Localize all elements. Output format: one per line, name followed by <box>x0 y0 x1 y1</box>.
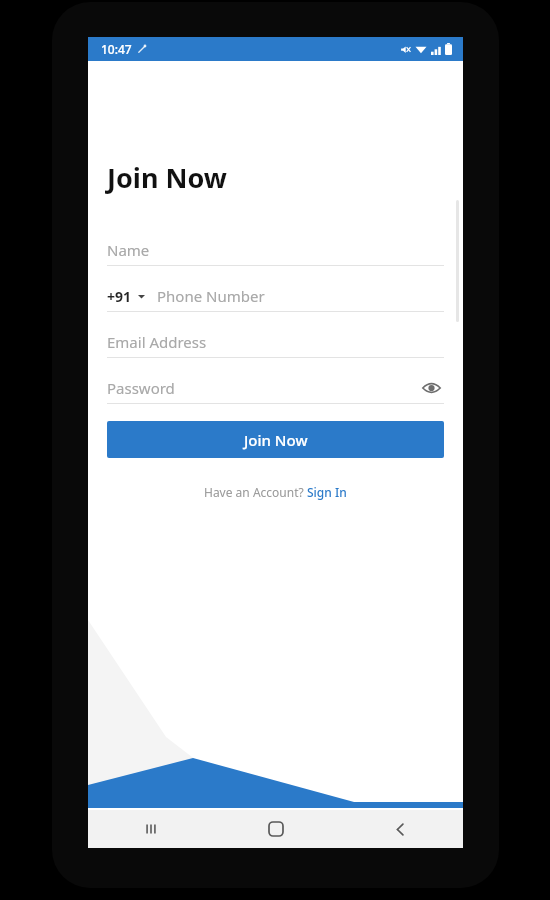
staticText: 10:47 <box>101 41 132 57</box>
button[interactable]: Recents <box>88 810 213 848</box>
button[interactable]: Email Address <box>107 327 444 358</box>
staticText: Sign In <box>307 484 347 500</box>
staticText: Name <box>107 240 150 260</box>
button[interactable]: Password <box>107 373 444 404</box>
staticText: Phone Number <box>157 286 265 306</box>
staticText: Have an Account? <box>204 484 307 500</box>
button[interactable]: Join Now <box>107 421 444 458</box>
button[interactable]: Name <box>107 235 444 266</box>
staticText: Join Now <box>107 159 227 196</box>
staticText: Join Now <box>244 430 308 450</box>
button[interactable]: Back <box>338 810 463 848</box>
button[interactable]: +91 <box>107 281 444 312</box>
staticText: Password <box>107 378 175 398</box>
button[interactable]: Show password <box>418 375 444 401</box>
staticText: +91 <box>107 287 132 306</box>
button[interactable]: Home <box>213 810 338 848</box>
button[interactable]: Sign In <box>307 484 347 500</box>
staticText: Email Address <box>107 332 207 352</box>
